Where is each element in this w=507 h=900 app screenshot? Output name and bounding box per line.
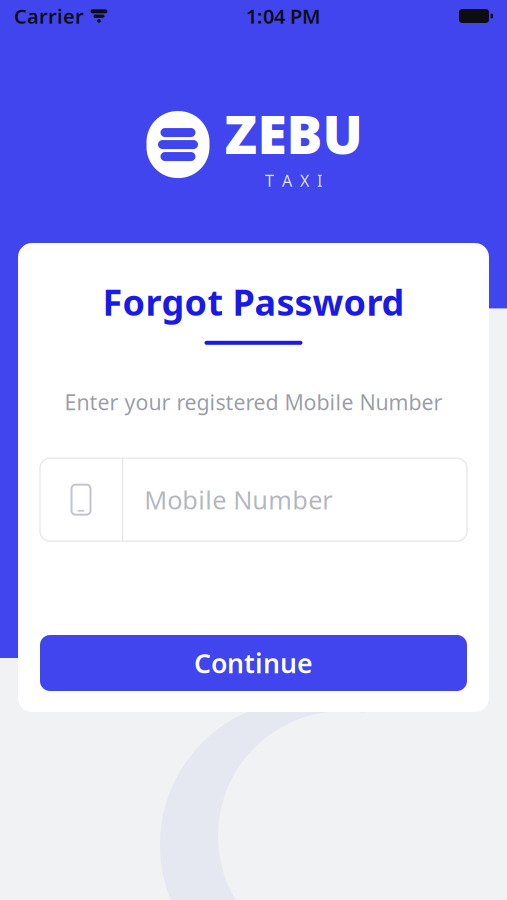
button[interactable]: Mobile Number [40,458,467,541]
staticText: T A X I [265,170,322,191]
staticText: ZEBU [224,98,362,169]
staticText: Enter your registered Mobile Number [64,388,442,416]
staticText: Continue [194,645,313,681]
staticText: 1:04 PM [246,3,321,29]
staticText: Forgot Password [102,278,404,326]
button[interactable]: Continue [40,635,467,691]
staticText: Mobile Number [144,483,332,516]
staticText: Carrier [14,3,84,29]
